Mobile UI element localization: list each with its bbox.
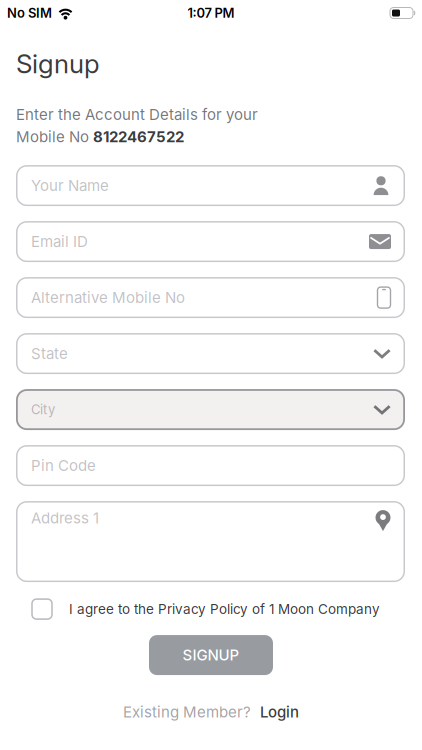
staticText: City <box>31 402 55 417</box>
staticText: I agree to the Privacy Policy of 1 Moon … <box>69 601 380 617</box>
button[interactable]: Login <box>260 703 299 721</box>
staticText: Address 1 <box>31 509 99 527</box>
button[interactable]: Address 1 <box>16 501 405 582</box>
staticText: State <box>31 344 68 363</box>
staticText: Enter the Account Details for your <box>16 105 258 124</box>
button[interactable]: Alternative Mobile No <box>16 277 405 318</box>
staticText: Existing Member? <box>123 703 251 721</box>
staticText: Alternative Mobile No <box>31 288 185 307</box>
staticText: 8122467522 <box>93 128 184 146</box>
button[interactable]: State <box>16 333 405 374</box>
button[interactable]: SIGNUP <box>149 635 273 675</box>
staticText: Pin Code <box>31 456 96 475</box>
staticText: Mobile No <box>16 128 93 146</box>
staticText: Email ID <box>31 232 88 251</box>
staticText: Signup <box>16 48 100 79</box>
button[interactable]: Your Name <box>16 165 405 206</box>
button[interactable]: City <box>16 389 405 430</box>
staticText: Your Name <box>31 176 109 195</box>
staticText: SIGNUP <box>182 646 239 664</box>
staticText: Login <box>260 703 299 721</box>
button[interactable]: Email ID <box>16 221 405 262</box>
button[interactable]: Pin Code <box>16 445 405 486</box>
staticText: 1:07 PM <box>187 5 234 21</box>
staticText: No SIM <box>7 5 52 21</box>
button[interactable]: I agree to the Privacy Policy <box>32 599 52 619</box>
